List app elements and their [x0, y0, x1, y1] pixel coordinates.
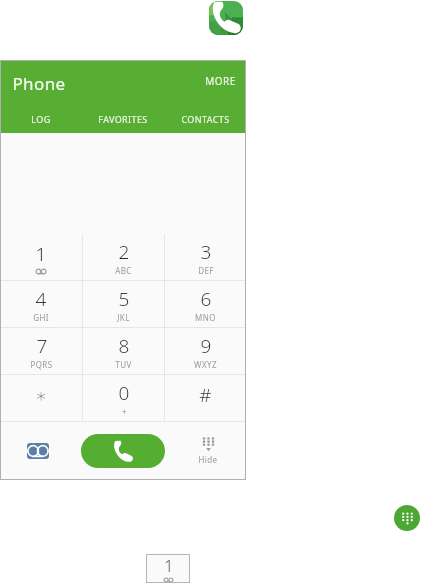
staticText: 4 — [35, 286, 47, 312]
button[interactable]: 4 — [0, 281, 82, 328]
staticText: 3 — [200, 239, 212, 265]
staticText: 0 — [118, 380, 130, 406]
button[interactable]: ∗ — [0, 375, 82, 422]
staticText: 2 — [118, 239, 130, 265]
button[interactable]: FAVORITES — [82, 105, 164, 133]
button[interactable]: CONTACTS — [164, 105, 246, 133]
staticText: JKL — [117, 312, 130, 323]
staticText: 6 — [200, 286, 212, 312]
staticText: Hide — [198, 454, 218, 465]
button[interactable]: 3 — [165, 234, 246, 281]
button[interactable]: 7 — [0, 328, 82, 375]
button[interactable]: 5 — [83, 281, 164, 328]
button[interactable]: LOG — [0, 105, 82, 133]
staticText: MORE — [205, 74, 236, 88]
staticText: DEF — [198, 265, 214, 276]
button[interactable]: 2 — [83, 234, 164, 281]
staticText: + — [122, 406, 127, 417]
button[interactable]: 1 — [0, 234, 82, 281]
button[interactable]: 6 — [165, 281, 246, 328]
button[interactable]: 0 — [83, 375, 164, 422]
staticText: PQRS — [30, 359, 53, 370]
button[interactable]: Call — [81, 434, 165, 468]
staticText: LOG — [31, 113, 51, 125]
staticText: 1 — [164, 555, 174, 577]
button[interactable]: # — [165, 375, 246, 422]
staticText: ∗ — [35, 384, 48, 406]
button[interactable]: 9 — [165, 328, 246, 375]
button[interactable]: Voicemail — [0, 422, 75, 479]
staticText: Phone — [12, 72, 66, 95]
staticText: WXYZ — [194, 359, 217, 370]
staticText: CONTACTS — [181, 113, 230, 125]
staticText: GHI — [33, 312, 49, 323]
button[interactable]: Hide — [170, 422, 246, 479]
staticText: 1 — [35, 241, 47, 267]
button[interactable]: Phone app — [209, 1, 243, 35]
button[interactable]: Open keypad — [394, 505, 420, 531]
staticText: TUV — [115, 359, 132, 370]
button[interactable]: 1 — [146, 554, 190, 583]
staticText: 9 — [200, 333, 212, 359]
button[interactable]: MORE — [205, 74, 236, 88]
staticText: 8 — [118, 333, 130, 359]
staticText: 7 — [36, 333, 48, 359]
staticText: ABC — [115, 265, 132, 276]
staticText: 5 — [118, 286, 130, 312]
button[interactable]: 8 — [83, 328, 164, 375]
staticText: MNO — [195, 312, 216, 323]
staticText: # — [199, 382, 212, 408]
staticText: FAVORITES — [98, 113, 148, 125]
